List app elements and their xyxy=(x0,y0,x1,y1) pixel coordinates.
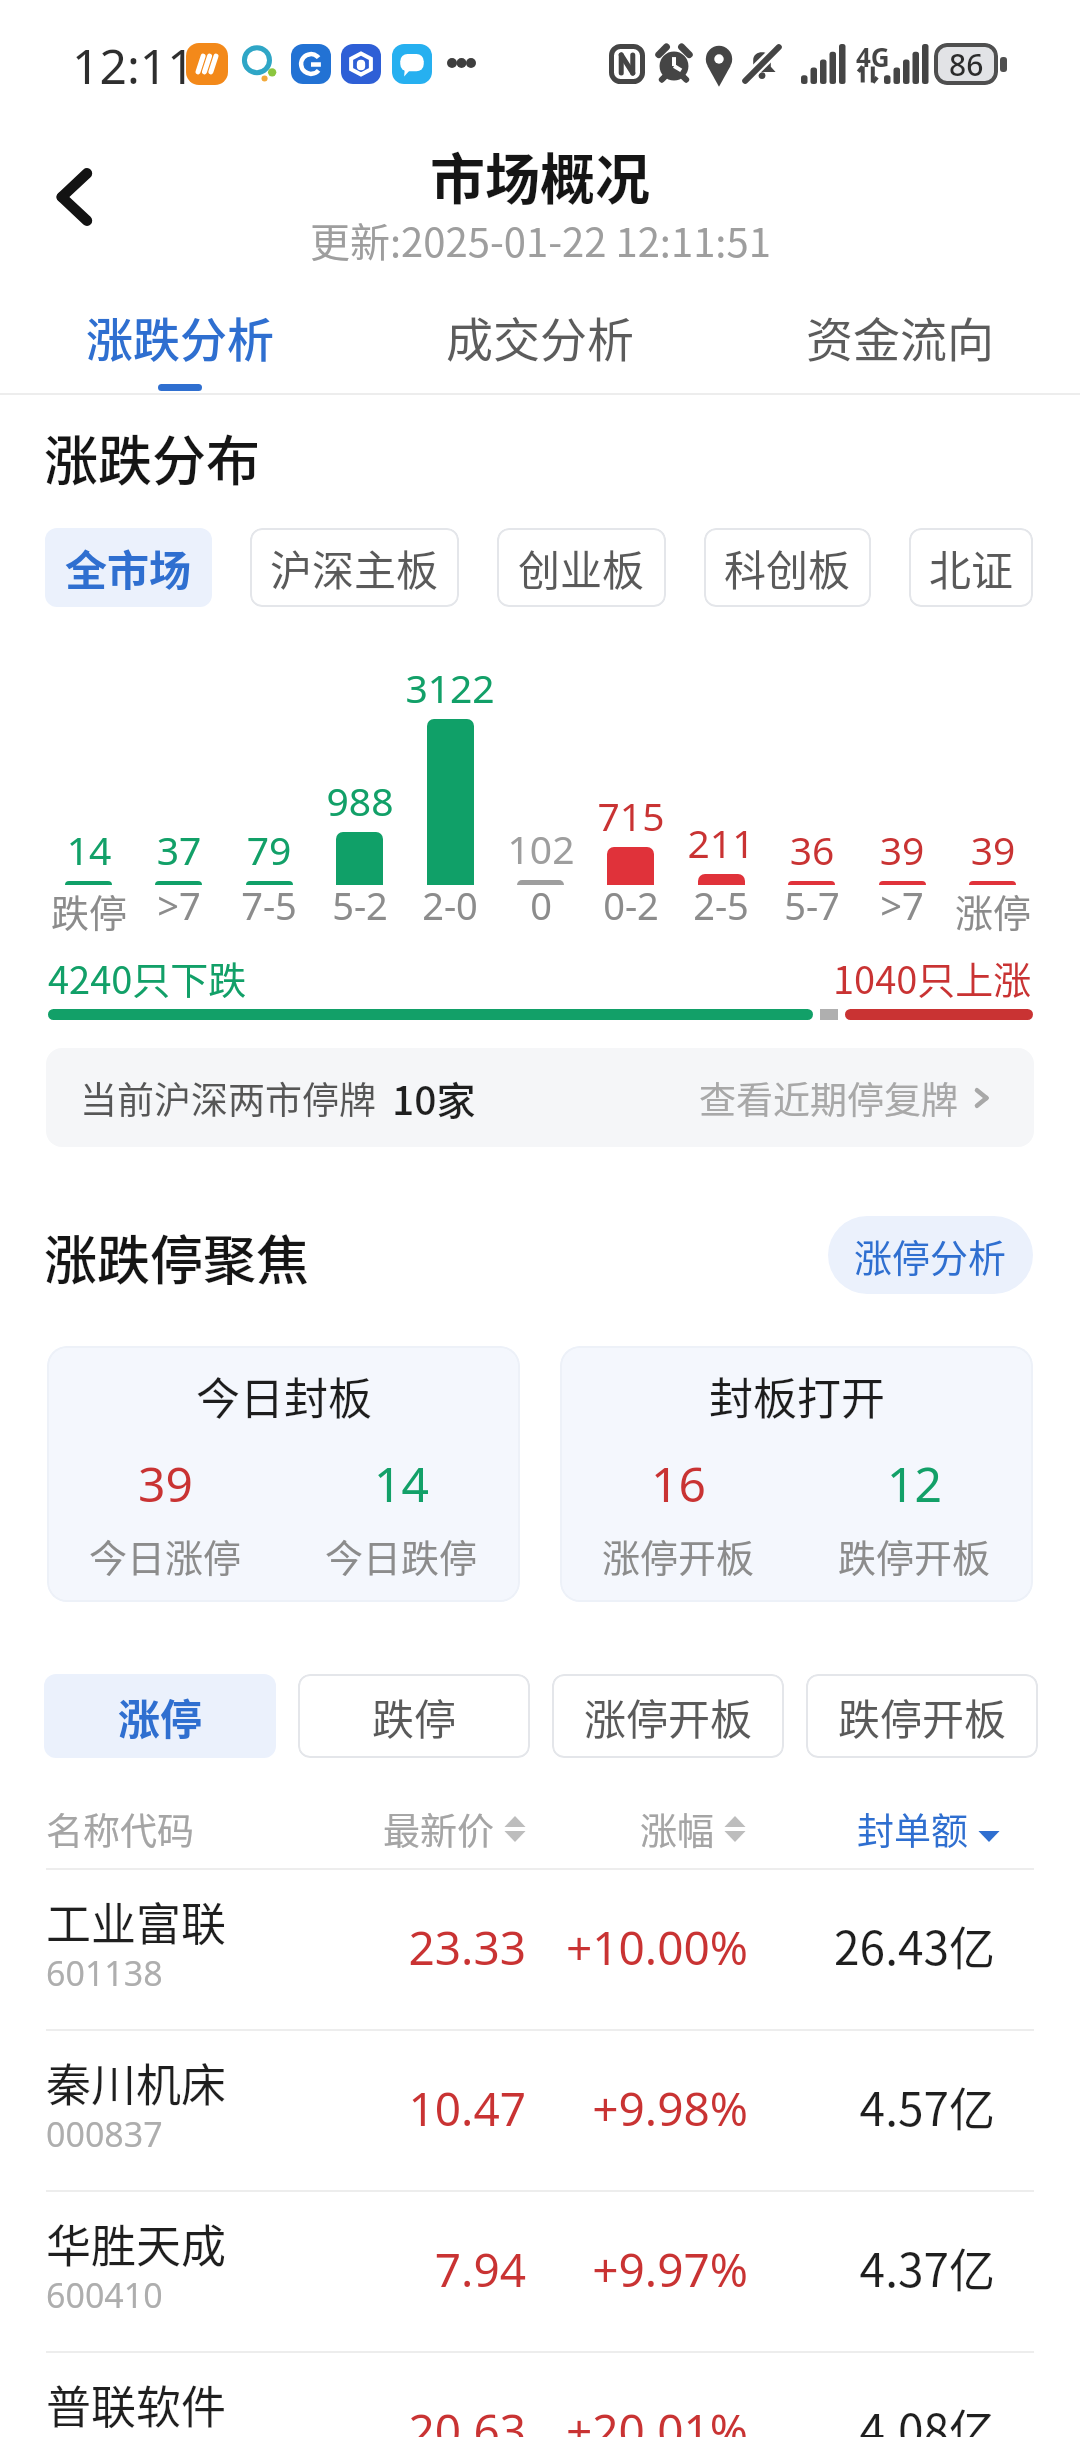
staticText: 涨跌停聚焦 xyxy=(44,1219,309,1296)
staticText: 2-5 xyxy=(661,879,781,931)
staticText: 3122 xyxy=(390,661,510,714)
staticText: 39 xyxy=(933,823,1053,876)
staticText: 79 xyxy=(209,823,329,876)
button[interactable]: 涨停分析 xyxy=(828,1216,1033,1294)
staticText: 最新价 xyxy=(383,1802,494,1856)
staticText: >7 xyxy=(842,879,962,931)
staticText: >7 xyxy=(119,879,239,931)
staticText: 715 xyxy=(571,789,691,842)
staticText: 涨跌分布 xyxy=(44,418,260,496)
staticText: 普联软件 xyxy=(46,2372,227,2437)
staticText: 沪深主板 xyxy=(270,537,439,598)
staticText: 000837 xyxy=(46,2111,163,2157)
staticText: 14 xyxy=(29,823,149,876)
button[interactable]: 工业富联 xyxy=(0,1868,1080,2029)
staticText: 102 xyxy=(481,822,601,875)
staticText: 跌停 xyxy=(372,1686,457,1747)
staticText: 跌停开板 xyxy=(838,1528,991,1583)
staticText: 成交分析 xyxy=(446,302,634,370)
button[interactable]: 今日封板 xyxy=(47,1346,520,1602)
staticText: 4240只下跌 xyxy=(48,950,247,1005)
button[interactable]: 跌停 xyxy=(298,1674,530,1758)
staticText: 4.57亿 xyxy=(755,2073,995,2140)
staticText: 涨跌分析 xyxy=(86,302,274,370)
staticText: 涨幅 xyxy=(640,1802,714,1856)
staticText: 秦川机床 xyxy=(46,2050,227,2115)
staticText: 2-0 xyxy=(390,879,510,931)
staticText: 4G xyxy=(856,39,890,74)
staticText: 封板打开 xyxy=(709,1364,885,1428)
button[interactable]: 秦川机床 xyxy=(0,2029,1080,2190)
staticText: 37 xyxy=(119,823,239,876)
staticText: +9.97% xyxy=(507,2238,748,2301)
staticText: 资金流向 xyxy=(806,302,994,370)
staticText: 12 xyxy=(887,1451,942,1516)
staticText: 名称代码 xyxy=(46,1802,194,1856)
staticText: 工业富联 xyxy=(46,1889,227,1954)
staticText: 36 xyxy=(752,823,872,876)
staticText: 0-2 xyxy=(571,879,691,931)
staticText: 市场概况 xyxy=(430,135,651,215)
staticText: 600410 xyxy=(46,2272,163,2318)
button[interactable]: 华胜天成 xyxy=(0,2190,1080,2351)
button[interactable]: 成交分析 xyxy=(360,282,720,393)
staticText: 华胜天成 xyxy=(46,2211,227,2276)
staticText: 创业板 xyxy=(518,537,645,598)
staticText: +10.00% xyxy=(507,1916,748,1979)
button[interactable]: 当前沪深两市停牌 xyxy=(46,1048,1034,1147)
staticText: 23.33 xyxy=(285,1916,526,1979)
staticText: 更新:2025-01-22 12:11:51 xyxy=(310,211,771,269)
button[interactable]: 全市场 xyxy=(45,528,212,607)
staticText: 跌停开板 xyxy=(838,1686,1007,1747)
button[interactable]: 科创板 xyxy=(704,528,871,607)
staticText: 16 xyxy=(651,1451,706,1516)
button[interactable]: 跌停开板 xyxy=(806,1674,1038,1758)
staticText: 4.08亿 xyxy=(755,2395,995,2437)
staticText: +20.01% xyxy=(507,2399,748,2437)
staticText: 988 xyxy=(300,774,420,827)
staticText: 7.94 xyxy=(285,2238,526,2301)
staticText: 涨停 xyxy=(933,883,1053,938)
staticText: 0 xyxy=(481,879,601,931)
button[interactable]: 资金流向 xyxy=(720,282,1080,393)
button[interactable]: 涨跌分析 xyxy=(0,282,360,393)
staticText: 科创板 xyxy=(724,537,851,598)
staticText: 39 xyxy=(842,823,962,876)
staticText: 14 xyxy=(374,1451,429,1516)
staticText: 12:11 xyxy=(72,33,195,98)
staticText: 26.43亿 xyxy=(755,1912,995,1979)
staticText: 10家 xyxy=(392,1070,476,1126)
staticText: 7-5 xyxy=(209,879,329,931)
staticText: 查看近期停复牌 xyxy=(699,1071,958,1125)
staticText: 跌停 xyxy=(29,883,149,938)
staticText: 1040只上涨 xyxy=(833,950,1032,1005)
staticText: 5-2 xyxy=(300,879,420,931)
staticText: 今日封板 xyxy=(196,1364,372,1428)
staticText: 涨停开板 xyxy=(584,1686,753,1747)
staticText: 当前沪深两市停牌 xyxy=(80,1071,376,1125)
staticText: 全市场 xyxy=(65,537,192,598)
staticText: 86 xyxy=(949,44,984,85)
staticText: 北证 xyxy=(929,537,1014,598)
staticText: 今日跌停 xyxy=(325,1528,478,1583)
staticText: 涨停 xyxy=(118,1686,203,1747)
staticText: 涨停开板 xyxy=(602,1528,755,1583)
staticText: 涨停分析 xyxy=(854,1228,1007,1283)
staticText: 211 xyxy=(661,816,781,869)
button[interactable]: 北证 xyxy=(909,528,1033,607)
staticText: 39 xyxy=(138,1451,193,1516)
staticText: 今日涨停 xyxy=(89,1528,242,1583)
button[interactable]: 普联软件 xyxy=(0,2351,1080,2437)
staticText: +9.98% xyxy=(507,2077,748,2140)
button[interactable]: Back xyxy=(24,147,124,247)
button[interactable]: 创业板 xyxy=(497,528,666,607)
staticText: 4.37亿 xyxy=(755,2234,995,2301)
button[interactable]: 沪深主板 xyxy=(250,528,459,607)
staticText: 封单额 xyxy=(857,1802,968,1856)
button[interactable]: 涨停 xyxy=(44,1674,276,1758)
staticText: 5-7 xyxy=(752,879,872,931)
button[interactable]: 涨停开板 xyxy=(552,1674,784,1758)
staticText: 601138 xyxy=(46,1950,163,1996)
button[interactable]: 封板打开 xyxy=(560,1346,1033,1602)
